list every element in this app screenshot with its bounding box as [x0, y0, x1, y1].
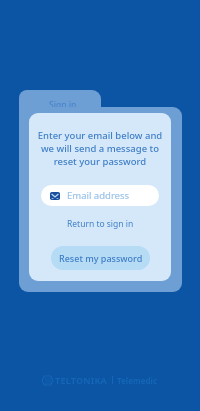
button[interactable]: Sign in [19, 90, 101, 120]
button[interactable]: Reset my password [51, 246, 150, 270]
staticText: Reset my password [59, 252, 143, 264]
staticText: Email address [67, 189, 130, 202]
other: Email [50, 192, 60, 200]
staticText: Return to sign in [67, 218, 134, 230]
staticText: Telemedic [117, 375, 158, 386]
staticText: Enter your email below and we will send … [29, 129, 171, 168]
button[interactable]: Return to sign in [61, 216, 140, 232]
staticText: TELTONIKA [55, 374, 108, 386]
button[interactable]: Email [41, 185, 159, 206]
staticText: Sign in [49, 99, 77, 111]
other: Teltonika logo [42, 376, 53, 385]
